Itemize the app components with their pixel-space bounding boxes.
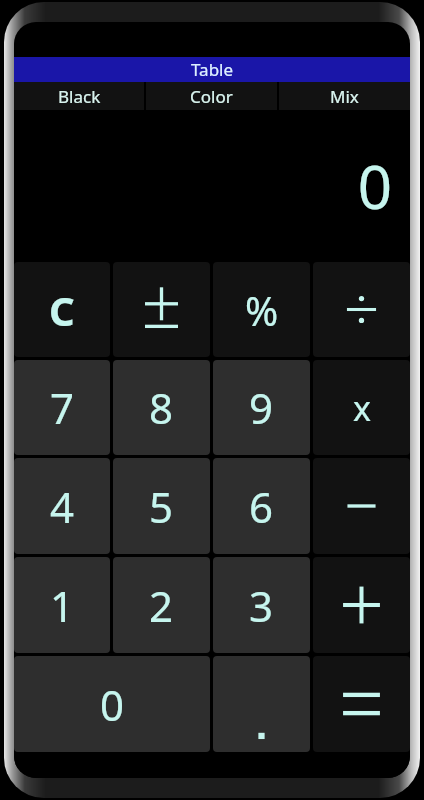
- staticText: 9: [249, 379, 274, 436]
- button[interactable]: Mix: [279, 82, 410, 110]
- staticText: 1: [50, 577, 75, 634]
- staticText: C: [49, 283, 75, 337]
- staticText: 4: [50, 478, 75, 535]
- button[interactable]: Table: [14, 57, 410, 82]
- button[interactable]: Divide: [313, 262, 410, 357]
- button[interactable]: 4: [14, 458, 110, 554]
- button[interactable]: Black: [14, 82, 144, 110]
- button[interactable]: 7: [14, 360, 110, 455]
- button[interactable]: Plus minus: [113, 262, 210, 357]
- staticText: 7: [50, 379, 75, 436]
- button[interactable]: 2: [113, 557, 210, 653]
- button[interactable]: Minus: [313, 458, 410, 554]
- button[interactable]: x: [313, 360, 410, 455]
- button[interactable]: Decimal point: [213, 656, 310, 752]
- staticText: Black: [58, 85, 101, 108]
- button[interactable]: 1: [14, 557, 110, 653]
- staticText: %: [245, 283, 279, 337]
- button[interactable]: 9: [213, 360, 310, 455]
- button[interactable]: 6: [213, 458, 310, 554]
- button[interactable]: Equals: [313, 656, 410, 752]
- button[interactable]: %: [213, 262, 310, 357]
- staticText: 0: [100, 676, 125, 733]
- staticText: x: [353, 385, 371, 431]
- staticText: 2: [149, 577, 174, 634]
- button[interactable]: Plus: [313, 557, 410, 653]
- button[interactable]: 8: [113, 360, 210, 455]
- button[interactable]: 3: [213, 557, 310, 653]
- staticText: 8: [149, 379, 174, 436]
- staticText: Color: [190, 85, 233, 108]
- staticText: Mix: [330, 85, 359, 108]
- staticText: 0: [357, 145, 392, 227]
- button[interactable]: C: [14, 262, 110, 357]
- staticText: 5: [149, 478, 174, 535]
- staticText: 3: [249, 577, 274, 634]
- button[interactable]: Color: [146, 82, 277, 110]
- staticText: Table: [191, 58, 234, 81]
- button[interactable]: 0: [14, 656, 210, 752]
- button[interactable]: 5: [113, 458, 210, 554]
- staticText: 6: [249, 478, 274, 535]
